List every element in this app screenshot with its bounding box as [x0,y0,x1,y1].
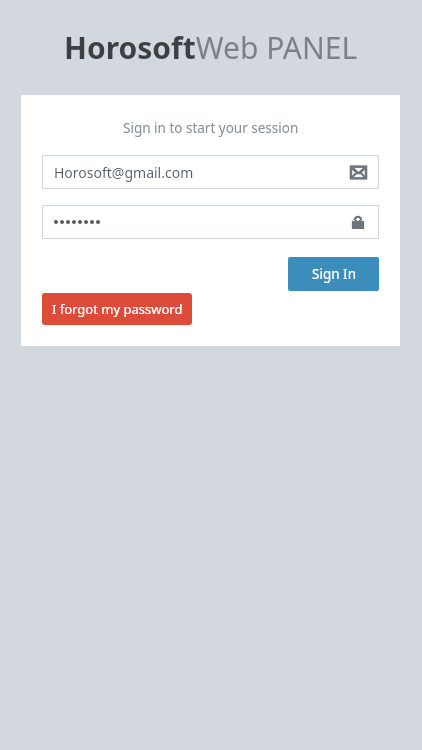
button[interactable]: Horosoft@gmail.com [42,155,379,189]
button[interactable]: Password [42,205,379,239]
button[interactable]: I forgot my password [42,293,192,325]
other: Password [349,213,367,231]
staticText: Sign in to start your session [123,119,299,137]
staticText: Sign In [312,265,356,283]
button[interactable]: Sign In [288,257,379,291]
other: Email [349,163,367,181]
staticText: I forgot my password [52,300,183,318]
staticText: HorosoftWeb PANEL [64,27,358,68]
staticText: Horosoft@gmail.com [54,163,194,182]
